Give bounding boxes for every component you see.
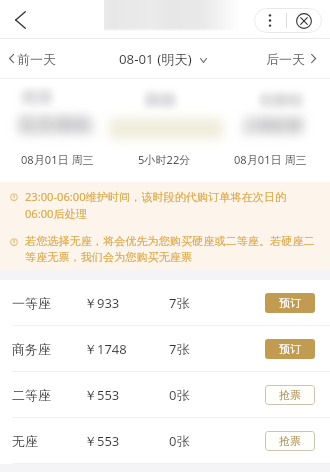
staticText: 高铁 (145, 90, 176, 110)
button[interactable]: 预订 (265, 339, 315, 359)
staticText: 抢票 (279, 434, 301, 448)
staticText: 二等座 (12, 387, 51, 403)
button[interactable]: 预订 (265, 293, 315, 313)
staticText: ￥1748 (84, 340, 127, 358)
staticText: 预订 (279, 296, 301, 310)
staticText: 0张 (169, 386, 190, 404)
staticText: ￥933 (84, 294, 120, 312)
staticText: 7张 (169, 294, 190, 312)
button[interactable]: 抢票 (265, 385, 315, 405)
staticText: 08-01 (明天) (119, 50, 192, 68)
staticText: ￥553 (84, 432, 120, 450)
staticText: 北京南站 (17, 113, 93, 137)
button[interactable]: Close (287, 8, 322, 33)
staticText: 上海虹桥 (240, 115, 305, 135)
button[interactable]: 一等座 (0, 280, 330, 326)
staticText: ￥553 (84, 386, 120, 404)
staticText: 虹桥站 (260, 91, 304, 109)
button[interactable]: More options (254, 8, 286, 33)
staticText: 0张 (169, 432, 190, 450)
button[interactable]: 商务座 (0, 326, 330, 372)
staticText: 商务座 (12, 341, 51, 357)
staticText: 预订 (279, 342, 301, 356)
staticText: 抢票 (279, 388, 301, 402)
staticText: 北京 (22, 87, 53, 107)
staticText: 5小时22分 (138, 152, 191, 167)
button[interactable]: Back (6, 6, 34, 34)
staticText: 前一天 (17, 51, 56, 67)
staticText: 后一天 (266, 51, 305, 67)
button[interactable]: 08-01 (明天) (119, 39, 199, 78)
button[interactable]: 抢票 (265, 431, 315, 451)
button[interactable]: 前一天 (9, 39, 56, 78)
staticText: 无座 (12, 433, 38, 449)
staticText: 23:00-06:00维护时间，该时段的代购订单将在次日的 06:00后处理 (25, 189, 287, 221)
staticText: 7张 (169, 340, 190, 358)
staticText: 08月01日 周三 (234, 152, 307, 167)
button[interactable]: 无座 (0, 418, 330, 464)
button[interactable]: 后一天 (266, 39, 316, 78)
staticText: 若您选择无座，将会优先为您购买硬座或二等座。若硬座二 等座无票，我们会为您购买无… (25, 234, 315, 264)
staticText: 08月01日 周三 (21, 152, 94, 167)
button[interactable]: 二等座 (0, 372, 330, 418)
staticText: 一等座 (12, 295, 51, 311)
